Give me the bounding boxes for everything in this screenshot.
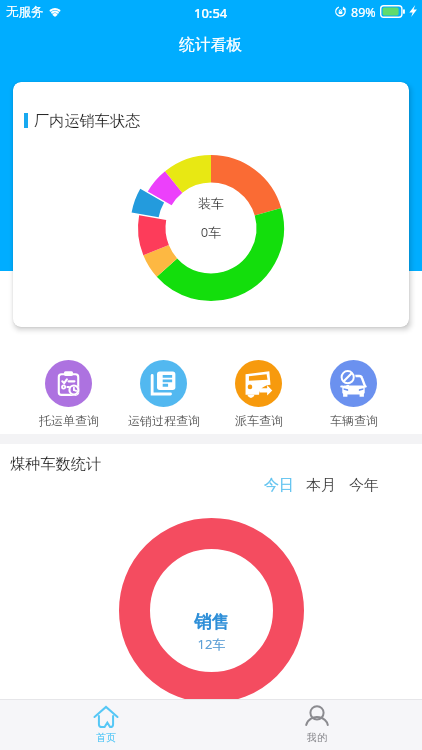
staticText: 10:54 xyxy=(194,4,228,22)
staticText: 销售 xyxy=(119,611,304,633)
staticText: 本月 xyxy=(306,476,336,495)
staticText: 0车 xyxy=(138,223,284,241)
button[interactable]: 我的 xyxy=(211,699,422,750)
button[interactable]: 首页 xyxy=(0,699,211,750)
staticText: 首页 xyxy=(96,731,116,744)
button[interactable]: 派车查询 xyxy=(211,360,306,428)
button[interactable]: 运销过程查询 xyxy=(116,360,211,428)
button[interactable]: 托运单查询 xyxy=(21,360,116,428)
staticText: 12车 xyxy=(119,635,304,653)
staticText: 今年 xyxy=(349,476,379,495)
staticText: 无服务 xyxy=(6,4,44,20)
button[interactable]: 车辆查询 xyxy=(306,360,401,428)
staticText: 装车 xyxy=(138,195,284,211)
staticText: 车辆查询 xyxy=(330,413,378,428)
staticText: 89% xyxy=(351,4,376,21)
button[interactable]: 今年 xyxy=(349,476,379,495)
staticText: 煤种车数统计 xyxy=(10,454,102,473)
staticText: 派车查询 xyxy=(235,413,283,428)
staticText: 统计看板 xyxy=(179,35,243,55)
button[interactable]: 本月 xyxy=(306,476,336,495)
staticText: 今日 xyxy=(264,476,294,495)
staticText: 运销过程查询 xyxy=(128,413,200,428)
button[interactable]: 今日 xyxy=(264,476,294,495)
staticText: 托运单查询 xyxy=(39,413,99,428)
staticText: 厂内运销车状态 xyxy=(34,111,141,130)
staticText: 我的 xyxy=(307,731,327,744)
